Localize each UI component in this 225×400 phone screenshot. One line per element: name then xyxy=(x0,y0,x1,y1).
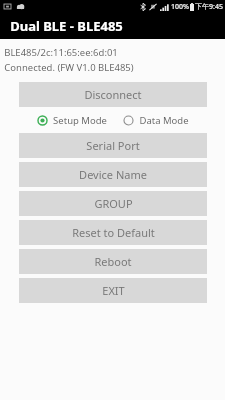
staticText: Reset to Default xyxy=(72,225,155,240)
staticText: Device Name xyxy=(79,167,147,182)
staticText: EXIT xyxy=(102,283,125,298)
staticText: Data Mode xyxy=(139,114,189,127)
staticText: Serial Port xyxy=(86,138,140,153)
button[interactable]: Device Name xyxy=(19,162,207,187)
staticText: Disconnect xyxy=(84,87,142,102)
button[interactable]: Disconnect xyxy=(19,82,207,107)
button[interactable]: GROUP xyxy=(19,191,207,216)
staticText: 100% xyxy=(171,2,189,12)
staticText: 下午9:45 xyxy=(195,2,223,12)
staticText: Reboot xyxy=(94,254,132,269)
staticText: Dual BLE - BLE485 xyxy=(10,17,123,35)
button[interactable]: Data Mode xyxy=(121,112,191,129)
staticText: Connected. (FW V1.0 BLE485) xyxy=(4,61,134,74)
button[interactable]: Serial Port xyxy=(19,133,207,158)
button[interactable]: Reset to Default xyxy=(19,220,207,245)
button[interactable]: Reboot xyxy=(19,249,207,274)
button[interactable]: EXIT xyxy=(19,278,207,303)
staticText: Setup Mode xyxy=(53,114,107,127)
staticText: GROUP xyxy=(94,196,133,211)
staticText: BLE485/2c:11:65:ee:6d:01 xyxy=(4,46,118,59)
button[interactable]: Setup Mode xyxy=(35,112,109,129)
